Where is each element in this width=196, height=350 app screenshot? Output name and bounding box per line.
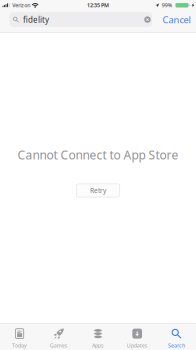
staticText: Games bbox=[50, 342, 68, 349]
staticText: Retry bbox=[90, 186, 106, 195]
button[interactable]: Retry bbox=[76, 184, 120, 197]
button[interactable]: Clear text bbox=[143, 15, 152, 24]
staticText: fidelity bbox=[23, 14, 49, 25]
staticText: 99% bbox=[162, 2, 172, 9]
staticText: Updates bbox=[127, 342, 148, 349]
button[interactable]: Apps bbox=[78, 323, 118, 350]
button[interactable]: Search bbox=[157, 323, 196, 350]
button[interactable]: Updates bbox=[118, 323, 157, 350]
button[interactable]: Search field, fidelity bbox=[9, 12, 152, 27]
button[interactable]: Today bbox=[0, 323, 39, 350]
staticText: Apps bbox=[92, 342, 104, 349]
staticText: Cannot Connect to App Store bbox=[17, 147, 178, 163]
button[interactable]: Cancel bbox=[152, 12, 190, 27]
staticText: Today bbox=[12, 342, 27, 349]
staticText: Search bbox=[168, 342, 185, 349]
button[interactable]: Games bbox=[39, 323, 78, 350]
staticText: 12:35 PM bbox=[87, 2, 109, 9]
staticText: Verizon bbox=[12, 2, 30, 9]
staticText: Cancel bbox=[162, 13, 190, 26]
